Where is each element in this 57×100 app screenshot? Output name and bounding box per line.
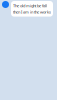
staticText: The old might be fall bbox=[13, 3, 47, 8]
staticText: then I am in the works bbox=[13, 9, 51, 15]
